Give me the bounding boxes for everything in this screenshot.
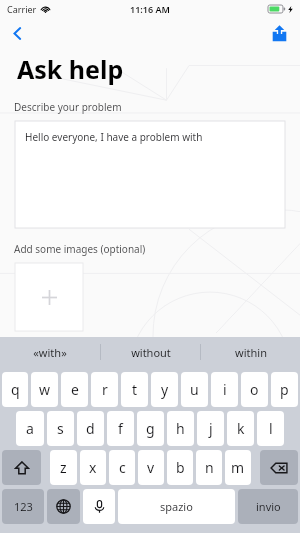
- staticText: Hello everyone, I have a problem with: [25, 130, 203, 144]
- staticText: q: [11, 380, 20, 399]
- staticText: 123: [14, 499, 33, 514]
- staticText: g: [146, 419, 155, 438]
- staticText: within: [235, 345, 267, 360]
- staticText: 11:16 AM: [130, 3, 170, 15]
- staticText: l: [269, 419, 273, 438]
- button[interactable]: Share: [264, 18, 294, 48]
- staticText: h: [176, 419, 185, 438]
- button[interactable]: Shift: [2, 450, 41, 485]
- staticText: m: [231, 458, 245, 477]
- button[interactable]: invio: [238, 489, 298, 524]
- button[interactable]: p: [271, 372, 298, 407]
- button[interactable]: v: [138, 450, 164, 485]
- staticText: s: [57, 419, 64, 438]
- button[interactable]: u: [181, 372, 208, 407]
- button[interactable]: s: [47, 411, 74, 446]
- staticText: o: [250, 380, 259, 399]
- staticText: k: [237, 419, 245, 438]
- staticText: r: [102, 380, 108, 399]
- button[interactable]: Dictation: [83, 489, 115, 524]
- staticText: f: [118, 419, 123, 438]
- staticText: Carrier: [7, 3, 37, 15]
- staticText: u: [190, 380, 199, 399]
- button[interactable]: r: [91, 372, 118, 407]
- staticText: Ask help: [17, 52, 124, 86]
- button[interactable]: Add image: [15, 263, 83, 331]
- staticText: Add some images (optional): [14, 242, 146, 256]
- button[interactable]: y: [151, 372, 178, 407]
- staticText: Describe your problem: [14, 100, 122, 114]
- staticText: w: [39, 380, 51, 399]
- button[interactable]: o: [241, 372, 268, 407]
- button[interactable]: j: [197, 411, 224, 446]
- button[interactable]: «with»: [0, 337, 100, 367]
- button[interactable]: h: [167, 411, 194, 446]
- staticText: «with»: [33, 345, 67, 360]
- staticText: j: [209, 419, 213, 438]
- staticText: n: [205, 458, 214, 477]
- staticText: b: [176, 458, 185, 477]
- button[interactable]: e: [61, 372, 88, 407]
- button[interactable]: Language: [47, 489, 80, 524]
- staticText: x: [89, 458, 97, 477]
- button[interactable]: d: [77, 411, 104, 446]
- button[interactable]: a: [16, 411, 44, 446]
- staticText: spazio: [160, 499, 193, 514]
- button[interactable]: t: [121, 372, 148, 407]
- button[interactable]: k: [227, 411, 254, 446]
- button[interactable]: z: [50, 450, 77, 485]
- staticText: e: [71, 380, 79, 399]
- staticText: a: [26, 419, 34, 438]
- button[interactable]: x: [80, 450, 106, 485]
- button[interactable]: q: [2, 372, 28, 407]
- staticText: d: [86, 419, 95, 438]
- button[interactable]: Hello everyone, I have a problem with: [15, 121, 285, 228]
- button[interactable]: n: [196, 450, 222, 485]
- button[interactable]: l: [257, 411, 284, 446]
- staticText: invio: [256, 499, 281, 514]
- staticText: v: [147, 458, 155, 477]
- button[interactable]: 123: [2, 489, 44, 524]
- button[interactable]: g: [137, 411, 164, 446]
- staticText: p: [280, 380, 289, 399]
- button[interactable]: m: [225, 450, 251, 485]
- button[interactable]: c: [109, 450, 135, 485]
- button[interactable]: Delete: [260, 450, 298, 485]
- button[interactable]: f: [107, 411, 134, 446]
- button[interactable]: w: [31, 372, 58, 407]
- staticText: y: [161, 380, 169, 399]
- button[interactable]: i: [211, 372, 238, 407]
- staticText: without: [131, 345, 171, 360]
- staticText: t: [132, 380, 138, 399]
- button[interactable]: within: [201, 337, 300, 367]
- button[interactable]: b: [167, 450, 193, 485]
- button[interactable]: without: [101, 337, 200, 367]
- staticText: c: [119, 458, 126, 477]
- button[interactable]: spazio: [118, 489, 235, 524]
- staticText: z: [60, 458, 67, 477]
- button[interactable]: Back: [0, 18, 34, 48]
- staticText: i: [223, 380, 227, 399]
